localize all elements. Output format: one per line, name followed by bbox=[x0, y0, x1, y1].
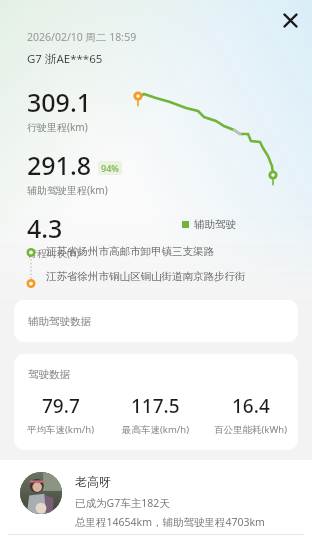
staticText: 291.8 bbox=[27, 148, 92, 182]
staticText: 驾驶数据 bbox=[28, 368, 70, 381]
button[interactable]: 老高呀 bbox=[20, 472, 298, 527]
staticText: 行程时长(h) bbox=[27, 246, 80, 260]
staticText: 辅助驾驶 bbox=[194, 218, 236, 231]
staticText: 已成为G7车主182天 bbox=[75, 496, 170, 510]
staticText: 309.1 bbox=[27, 85, 92, 119]
staticText: 老高呀 bbox=[75, 474, 111, 489]
staticText: 江苏省徐州市铜山区铜山街道南京路步行街 bbox=[46, 270, 246, 283]
staticText: 总里程14654km，辅助驾驶里程4703km bbox=[75, 515, 265, 529]
staticText: 16.4 bbox=[232, 393, 270, 419]
staticText: 行驶里程(km) bbox=[27, 120, 88, 134]
staticText: 79.7 bbox=[42, 393, 80, 419]
staticText: 江苏省扬州市高邮市卸甲镇三支渠路 bbox=[46, 245, 214, 258]
staticText: 平均车速(km/h) bbox=[27, 423, 95, 436]
staticText: 4.3 bbox=[27, 211, 63, 245]
staticText: 117.5 bbox=[131, 393, 180, 419]
staticText: 94% bbox=[101, 162, 119, 174]
staticText: 百公里能耗(kWh) bbox=[214, 423, 287, 436]
staticText: G7 浙AE***65 bbox=[27, 51, 103, 67]
staticText: 辅助驾驶里程(km) bbox=[27, 183, 108, 197]
button[interactable]: 驾驶数据 bbox=[14, 354, 298, 450]
button[interactable]: Close bbox=[276, 6, 304, 34]
staticText: 辅助驾驶数据 bbox=[28, 315, 91, 328]
button[interactable]: 辅助驾驶数据 bbox=[14, 300, 298, 342]
staticText: 最高车速(km/h) bbox=[122, 423, 190, 436]
staticText: 2026/02/10 周二 18:59 bbox=[27, 30, 137, 44]
